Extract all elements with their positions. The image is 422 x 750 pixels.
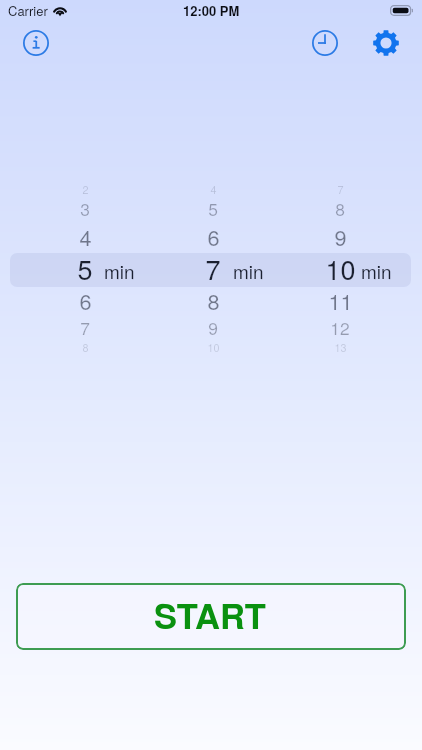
button[interactable]: 2 bbox=[30, 169, 140, 209]
staticText: 3 bbox=[80, 196, 90, 221]
button[interactable]: 8 bbox=[30, 327, 140, 367]
button[interactable]: 13 bbox=[285, 327, 395, 367]
staticText: 7 bbox=[80, 315, 90, 340]
button[interactable]: 7 bbox=[285, 169, 395, 209]
staticText: min bbox=[361, 257, 392, 284]
button[interactable]: 5 bbox=[30, 248, 140, 288]
staticText: START bbox=[154, 590, 266, 639]
button[interactable]: 3 bbox=[30, 188, 140, 228]
button[interactable]: 9 bbox=[285, 216, 395, 256]
staticText: 11 bbox=[328, 285, 353, 316]
staticText: 9 bbox=[208, 315, 218, 340]
staticText: 6 bbox=[79, 285, 92, 316]
staticText: 10 bbox=[325, 249, 356, 288]
button[interactable]: 12 bbox=[285, 307, 395, 347]
staticText: 8 bbox=[335, 196, 345, 221]
button[interactable]: History bbox=[306, 24, 344, 62]
staticText: 13 bbox=[334, 340, 347, 355]
staticText: 7 bbox=[205, 249, 221, 288]
button[interactable]: 4 bbox=[158, 169, 268, 209]
staticText: 5 bbox=[77, 249, 93, 288]
staticText: min bbox=[104, 257, 135, 284]
staticText: 12:00 PM bbox=[183, 1, 240, 20]
staticText: 5 bbox=[208, 196, 218, 221]
staticText: 12 bbox=[330, 315, 350, 340]
button[interactable]: 8 bbox=[158, 280, 268, 320]
button[interactable]: 7 bbox=[30, 307, 140, 347]
staticText: 2 bbox=[82, 182, 89, 197]
button[interactable]: 6 bbox=[30, 280, 140, 320]
staticText: Carrier bbox=[8, 1, 48, 20]
button[interactable]: 6 bbox=[158, 216, 268, 256]
staticText: min bbox=[233, 257, 264, 284]
button[interactable]: Settings bbox=[367, 24, 405, 62]
button[interactable]: 4 bbox=[30, 216, 140, 256]
staticText: 10 bbox=[207, 340, 220, 355]
button[interactable]: START bbox=[16, 583, 406, 650]
staticText: 9 bbox=[334, 221, 347, 252]
staticText: 8 bbox=[82, 340, 89, 355]
staticText: 8 bbox=[207, 285, 220, 316]
button[interactable]: 11 bbox=[285, 280, 395, 320]
button[interactable]: 8 bbox=[285, 188, 395, 228]
staticText: 4 bbox=[79, 221, 92, 252]
button[interactable]: 10 bbox=[158, 327, 268, 367]
button[interactable]: 7 bbox=[158, 248, 268, 288]
staticText: 4 bbox=[210, 182, 217, 197]
button[interactable]: 10 bbox=[285, 248, 395, 288]
staticText: 6 bbox=[207, 221, 220, 252]
button[interactable]: 9 bbox=[158, 307, 268, 347]
button[interactable]: Info bbox=[17, 24, 55, 62]
button[interactable]: 5 bbox=[158, 188, 268, 228]
staticText: 7 bbox=[337, 182, 344, 197]
